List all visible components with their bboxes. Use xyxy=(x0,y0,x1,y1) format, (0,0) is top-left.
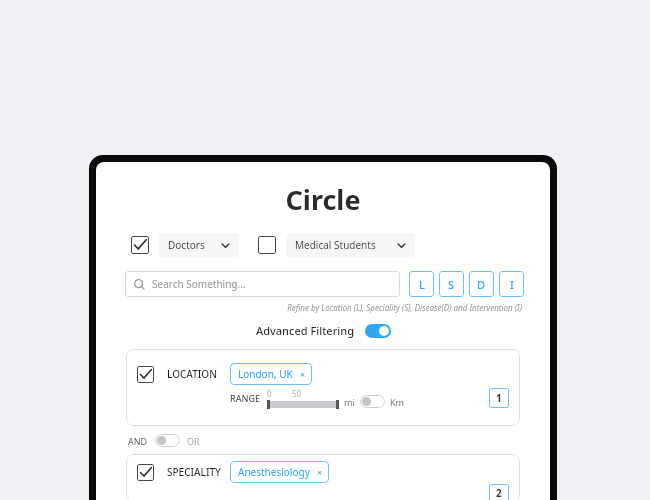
staticText: S xyxy=(448,277,455,292)
button[interactable]: London, UK xyxy=(230,363,312,385)
staticText: D xyxy=(477,277,486,292)
button[interactable]: Doctors checkbox xyxy=(131,236,149,254)
staticText: 2 xyxy=(496,486,502,500)
staticText: RANGE xyxy=(230,392,261,404)
button[interactable]: Medical Students checkbox xyxy=(258,236,276,254)
staticText: Anesthesiology xyxy=(238,465,310,479)
staticText: London, UK xyxy=(238,367,293,381)
staticText: L xyxy=(419,277,425,292)
staticText: Km xyxy=(390,396,404,408)
button[interactable]: Search Something... xyxy=(125,271,400,297)
staticText: OR xyxy=(187,435,200,447)
staticText: × xyxy=(300,368,306,380)
button[interactable]: Medical Students xyxy=(286,233,415,257)
button[interactable]: Miles or kilometres toggle xyxy=(360,395,385,408)
button[interactable]: Anesthesiology xyxy=(230,461,329,483)
staticText: I xyxy=(510,277,514,292)
staticText: Circle xyxy=(96,181,550,218)
staticText: × xyxy=(317,466,323,478)
staticText: Advanced Filtering xyxy=(256,323,355,338)
staticText: Doctors xyxy=(168,238,205,252)
staticText: Search Something... xyxy=(152,277,246,291)
button[interactable]: 2 xyxy=(489,484,509,500)
staticText: 0 xyxy=(267,388,272,399)
staticText: 50 xyxy=(292,388,302,399)
button[interactable]: L xyxy=(409,271,434,297)
staticText: LOCATION xyxy=(167,367,217,381)
staticText: SPECIALITY xyxy=(167,465,221,479)
button[interactable]: Location filter checkbox xyxy=(137,366,154,383)
staticText: 1 xyxy=(496,391,502,405)
staticText: Medical Students xyxy=(295,238,376,252)
button[interactable]: 1 xyxy=(489,388,509,408)
button[interactable]: Doctors xyxy=(159,233,239,257)
button[interactable]: AND or OR toggle xyxy=(155,434,180,447)
button[interactable]: D xyxy=(469,271,494,297)
staticText: mi xyxy=(344,396,355,408)
button[interactable]: Advanced filtering toggle xyxy=(365,324,391,338)
staticText: Refine by Location (L), Speciality (S), … xyxy=(96,302,522,313)
button[interactable]: Range slider xyxy=(267,400,339,409)
staticText: AND xyxy=(128,435,148,447)
button[interactable]: I xyxy=(499,271,524,297)
button[interactable]: S xyxy=(439,271,464,297)
button[interactable]: Speciality filter checkbox xyxy=(137,464,154,481)
